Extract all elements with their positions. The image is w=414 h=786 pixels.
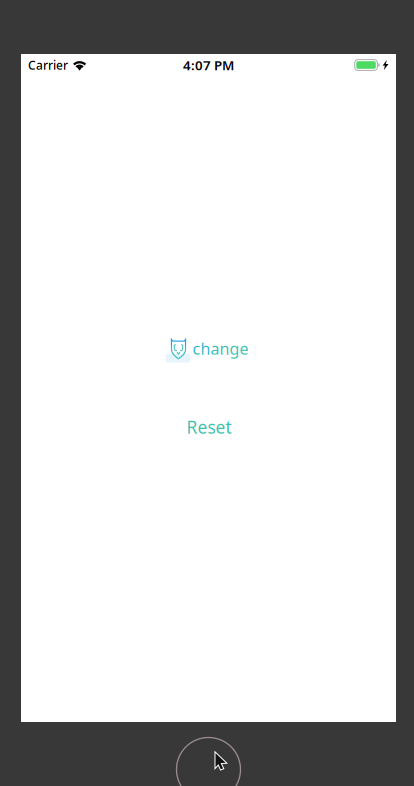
staticText: h [201,338,211,359]
staticText: Reset [186,415,231,438]
staticText: Carrier [28,57,68,73]
staticText: 4:07 PM [183,56,234,74]
button[interactable]: c [170,338,249,359]
staticText: c [193,338,201,359]
staticText: a [211,338,220,359]
staticText: n [220,338,230,359]
staticText: e [240,338,249,359]
staticText: g [230,338,240,359]
button[interactable]: Reset [186,415,231,438]
